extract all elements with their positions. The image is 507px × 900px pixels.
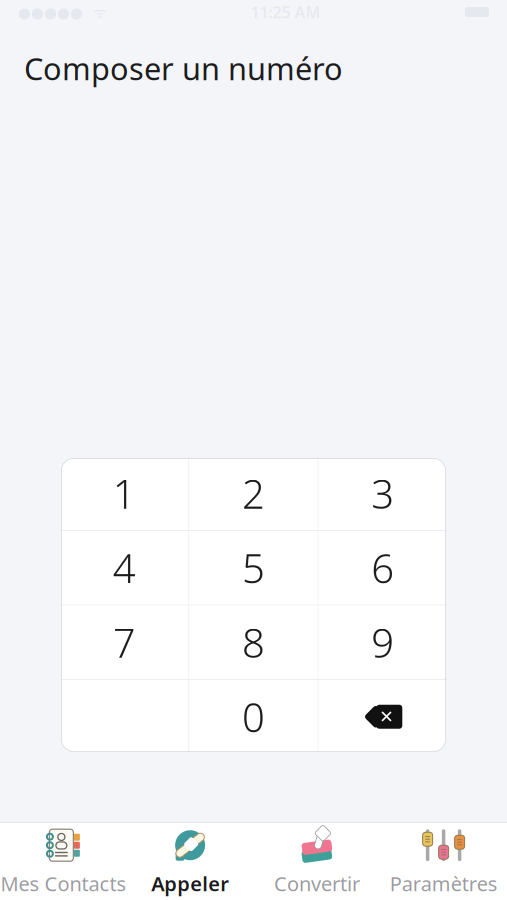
button[interactable]: Convertir xyxy=(253,823,380,900)
button[interactable]: Empty xyxy=(60,680,188,753)
staticText: 2 xyxy=(242,467,265,520)
staticText: 8 xyxy=(242,616,265,669)
button[interactable]: Paramètres xyxy=(380,823,507,900)
staticText: Paramètres xyxy=(390,870,498,897)
staticText: 5 xyxy=(242,541,265,594)
staticText: Convertir xyxy=(274,870,360,897)
button[interactable]: 5 xyxy=(189,531,318,604)
button[interactable]: 3 xyxy=(319,456,447,530)
staticText: Mes Contacts xyxy=(0,870,126,897)
staticText: 4 xyxy=(113,541,136,594)
button[interactable]: 8 xyxy=(189,605,318,679)
staticText: 9 xyxy=(371,616,394,669)
button[interactable]: 0 xyxy=(189,680,318,753)
button[interactable]: 6 xyxy=(319,531,447,604)
staticText: 7 xyxy=(113,616,136,669)
button[interactable]: 1 xyxy=(60,456,188,530)
staticText: Appeler xyxy=(151,870,229,897)
button[interactable]: 2 xyxy=(189,456,318,530)
button[interactable]: Mes Contacts xyxy=(0,823,127,900)
staticText: ●●●●● ᯤ xyxy=(18,2,106,22)
staticText: ✕ xyxy=(379,707,394,727)
staticText: 6 xyxy=(371,541,394,594)
button[interactable]: 9 xyxy=(319,605,447,679)
staticText: 11:25 AM xyxy=(250,1,320,23)
staticText: 3 xyxy=(371,467,394,520)
staticText: Composer un numéro xyxy=(24,48,343,89)
button[interactable]: Appeler xyxy=(127,823,254,900)
button[interactable]: Delete xyxy=(319,680,447,753)
button[interactable]: 7 xyxy=(60,605,188,679)
staticText: 0 xyxy=(242,690,265,743)
staticText: 1 xyxy=(113,467,136,520)
button[interactable]: 4 xyxy=(60,531,188,604)
